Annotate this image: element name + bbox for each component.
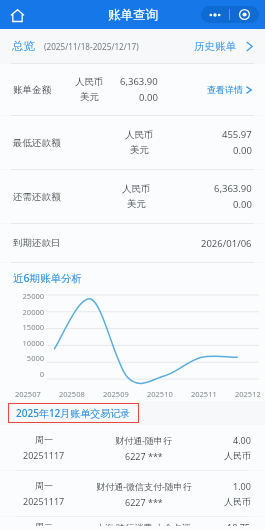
staticText: (2025/11/18-2025/12/17): [44, 41, 139, 52]
staticText: 账单查询: [108, 7, 158, 23]
staticText: 202512: [235, 389, 261, 399]
staticText: 总览: [12, 39, 35, 53]
staticText: 202511: [191, 389, 217, 399]
button[interactable]: 2025年12月账单交易记录: [8, 403, 139, 423]
staticText: 历史账单: [194, 40, 236, 53]
staticText: 18.75: [227, 521, 251, 526]
staticText: 20251117: [23, 495, 65, 507]
staticText: 1.00: [233, 480, 251, 492]
button[interactable]: 周一: [0, 471, 265, 516]
button[interactable]: 历史账单: [192, 37, 255, 56]
staticText: 25000: [22, 291, 44, 301]
staticText: 美元: [130, 144, 149, 156]
staticText: 周一: [35, 480, 53, 491]
staticText: 2025年12月账单交易记录: [16, 406, 131, 420]
staticText: 202508: [59, 389, 85, 399]
staticText: 上海 跨行消费 大众点评: [96, 521, 191, 526]
staticText: 人民币: [224, 496, 251, 507]
staticText: 2026/01/06: [201, 237, 252, 250]
staticText: 人民币: [122, 183, 151, 195]
staticText: 美元: [127, 198, 146, 210]
button[interactable]: 周一: [0, 425, 265, 470]
button[interactable]: 查看详情: [207, 80, 252, 99]
staticText: 查看详情: [207, 84, 243, 95]
staticText: 周二: [35, 521, 53, 526]
staticText: 6,363.90: [214, 182, 252, 195]
button[interactable]: 周二: [0, 517, 265, 530]
button[interactable]: Close: [230, 6, 259, 23]
button[interactable]: More options: [201, 6, 229, 23]
staticText: 455.97: [222, 128, 252, 141]
staticText: 美元: [80, 91, 99, 103]
staticText: 0: [39, 369, 44, 379]
staticText: 202510: [147, 389, 173, 399]
staticText: 20251117: [23, 449, 65, 461]
staticText: 到期还款日: [13, 237, 61, 249]
staticText: 202507: [15, 389, 41, 399]
staticText: 人民币: [224, 450, 251, 461]
button[interactable]: Home: [6, 4, 28, 26]
staticText: 5000: [26, 353, 44, 363]
staticText: 0.00: [139, 91, 158, 104]
staticText: 6,363.90: [120, 75, 158, 88]
staticText: 财付通-随申行: [115, 434, 172, 446]
staticText: 202509: [103, 389, 129, 399]
staticText: 15000: [22, 322, 44, 332]
staticText: 账单金额: [13, 84, 75, 96]
staticText: 还需还款额: [13, 191, 75, 203]
staticText: 6227 ***: [125, 450, 163, 462]
staticText: 20000: [22, 307, 44, 317]
staticText: 0.00: [233, 198, 252, 211]
staticText: 0.00: [233, 144, 252, 157]
staticText: 周一: [35, 434, 53, 445]
staticText: 人民币: [75, 76, 104, 88]
staticText: 10000: [22, 338, 44, 348]
staticText: 人民币: [125, 129, 154, 141]
staticText: 6227 ***: [125, 496, 163, 508]
staticText: 财付通-微信支付-随申行: [96, 480, 192, 492]
staticText: 4.00: [233, 434, 251, 446]
button[interactable]: 总览: [10, 36, 37, 56]
staticText: 近6期账单分析: [13, 271, 83, 285]
staticText: 最低还款额: [13, 137, 75, 149]
